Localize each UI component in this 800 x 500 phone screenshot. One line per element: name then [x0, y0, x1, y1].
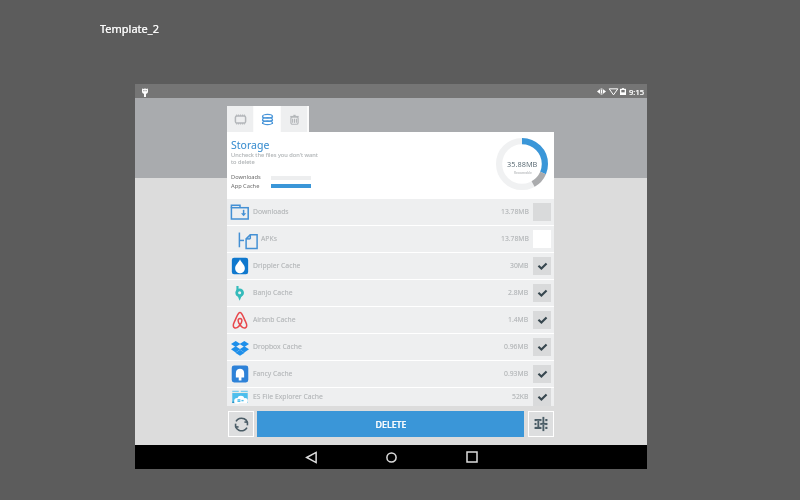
staticText: Dropbox Cache: [253, 342, 302, 351]
button[interactable]: Settings: [529, 412, 553, 436]
staticText: Storage: [231, 138, 270, 152]
staticText: Template_2: [100, 21, 159, 36]
button[interactable]: Select Fancy Cache: [533, 365, 551, 383]
button[interactable]: Banjo Cache: [227, 279, 554, 306]
button[interactable]: Refresh: [229, 412, 253, 436]
button[interactable]: Select Banjo Cache: [533, 284, 551, 302]
staticText: 30MB: [510, 261, 529, 270]
staticText: Uncheck the files you don't want to dele…: [231, 151, 318, 166]
button[interactable]: ES File Explorer Cache: [227, 387, 554, 406]
staticText: DELETE: [375, 418, 407, 430]
staticText: 52KB: [512, 392, 529, 401]
button[interactable]: Back: [301, 447, 321, 467]
button[interactable]: Airbnb Cache: [227, 306, 554, 333]
staticText: Drippler Cache: [253, 261, 301, 270]
button[interactable]: Select Airbnb Cache: [533, 311, 551, 329]
button[interactable]: Drippler Cache: [227, 252, 554, 279]
button[interactable]: Memory: [227, 106, 253, 132]
button[interactable]: Select ES File Explorer Cache: [533, 388, 551, 406]
button[interactable]: Junk: [281, 106, 307, 132]
staticText: 0.93MB: [504, 369, 529, 378]
staticText: 1.4MB: [508, 315, 529, 324]
staticText: 0.96MB: [504, 342, 529, 351]
staticText: 9:15: [629, 87, 645, 97]
staticText: Fancy Cache: [253, 369, 293, 378]
button[interactable]: APKs: [227, 225, 554, 252]
button[interactable]: Downloads: [227, 198, 554, 225]
staticText: 35.88MB: [507, 159, 538, 169]
staticText: ES File Explorer Cache: [253, 392, 323, 401]
button[interactable]: Dropbox Cache: [227, 333, 554, 360]
staticText: Airbnb Cache: [253, 315, 296, 324]
button[interactable]: Select Drippler Cache: [533, 257, 551, 275]
staticText: Downloads: [231, 173, 261, 181]
staticText: App Cache: [231, 182, 260, 190]
button[interactable]: Home: [381, 447, 401, 467]
button[interactable]: DELETE: [257, 411, 524, 437]
staticText: 13.78MB: [501, 234, 529, 243]
button[interactable]: Storage: [254, 106, 280, 132]
button[interactable]: Fancy Cache: [227, 360, 554, 387]
button[interactable]: Recents: [462, 447, 482, 467]
staticText: 13.78MB: [501, 207, 529, 216]
staticText: APKs: [261, 234, 277, 243]
staticText: Recoverable: [514, 171, 532, 175]
staticText: 2.8MB: [508, 288, 529, 297]
button[interactable]: Select Dropbox Cache: [533, 338, 551, 356]
staticText: Downloads: [253, 207, 289, 216]
staticText: Banjo Cache: [253, 288, 293, 297]
